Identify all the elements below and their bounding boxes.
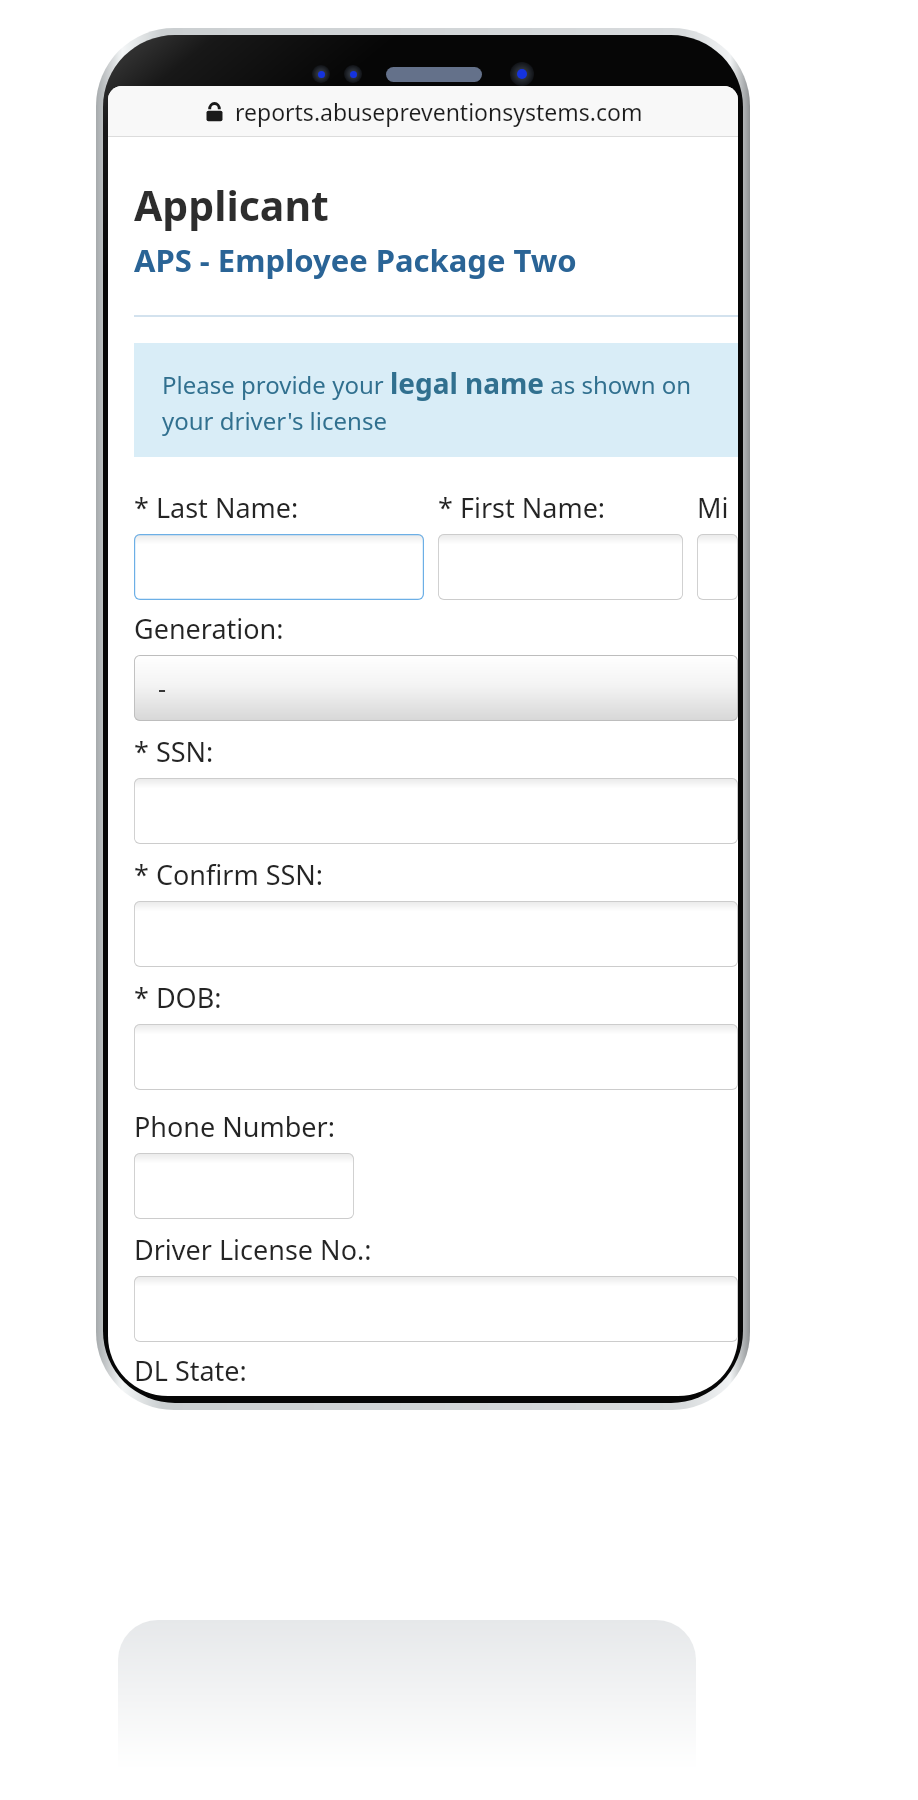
other: Secure connection xyxy=(204,101,225,122)
staticText: * First Name: xyxy=(438,489,606,526)
button[interactable] xyxy=(134,1153,354,1219)
staticText: * Last Name: xyxy=(134,489,299,526)
button[interactable] xyxy=(697,534,738,600)
button[interactable] xyxy=(134,1276,738,1342)
button[interactable] xyxy=(134,901,738,967)
staticText: * Confirm SSN: xyxy=(134,856,324,893)
staticText: - xyxy=(158,671,167,705)
staticText: Please provide your legal name as shown … xyxy=(162,364,738,437)
staticText: * SSN: xyxy=(134,733,214,770)
staticText: Phone Number: xyxy=(134,1108,335,1145)
button[interactable] xyxy=(134,1024,738,1090)
staticText: DL State: xyxy=(134,1352,247,1389)
staticText: APS - Employee Package Two xyxy=(134,239,577,281)
staticText: Applicant xyxy=(134,177,329,233)
button[interactable] xyxy=(438,534,683,600)
button[interactable] xyxy=(134,778,738,844)
staticText: Driver License No.: xyxy=(134,1231,372,1268)
staticText: * DOB: xyxy=(134,979,222,1016)
button[interactable] xyxy=(134,534,424,600)
button[interactable]: - xyxy=(134,655,738,721)
staticText: Middle Name: xyxy=(697,489,738,526)
staticText: reports.abusepreventionsystems.com xyxy=(235,96,643,127)
staticText: Generation: xyxy=(134,610,284,647)
